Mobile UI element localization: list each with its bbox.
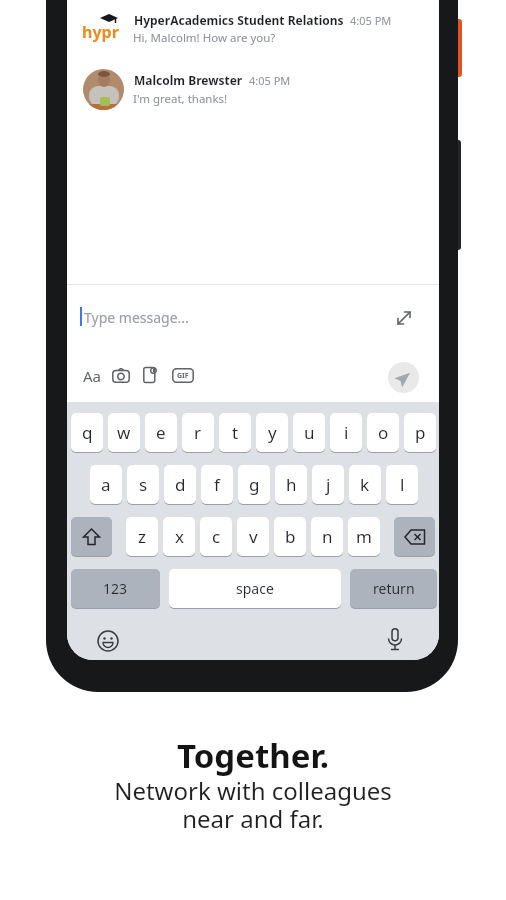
staticText: Malcolm Brewster bbox=[134, 72, 243, 88]
button[interactable]: e bbox=[145, 413, 177, 452]
button[interactable]: f bbox=[201, 465, 233, 504]
staticText: h bbox=[286, 473, 297, 496]
staticText: t bbox=[232, 421, 239, 444]
staticText: Network with colleagues near and far. bbox=[114, 774, 392, 835]
staticText: y bbox=[268, 421, 277, 444]
staticText: b bbox=[285, 525, 296, 548]
staticText: m bbox=[356, 525, 372, 548]
staticText: hypr bbox=[82, 21, 119, 43]
button[interactable]: p bbox=[404, 413, 436, 452]
button[interactable]: r bbox=[182, 413, 214, 452]
button[interactable]: h bbox=[275, 465, 307, 504]
button[interactable]: o bbox=[367, 413, 399, 452]
staticText: z bbox=[138, 525, 146, 548]
button[interactable] bbox=[394, 517, 435, 556]
button[interactable]: m bbox=[348, 517, 380, 556]
button[interactable]: t bbox=[219, 413, 251, 452]
button[interactable] bbox=[143, 366, 157, 384]
button[interactable]: s bbox=[127, 465, 159, 504]
button[interactable]: l bbox=[386, 465, 418, 504]
staticText: HyperAcademics Student Relations bbox=[134, 12, 344, 28]
button[interactable]: g bbox=[238, 465, 270, 504]
button[interactable]: n bbox=[311, 517, 343, 556]
button[interactable]: x bbox=[163, 517, 195, 556]
button[interactable]: y bbox=[256, 413, 288, 452]
staticText: q bbox=[82, 421, 93, 444]
button[interactable] bbox=[388, 362, 419, 393]
staticText: c bbox=[212, 525, 221, 548]
staticText: I'm great, thanks! bbox=[133, 91, 228, 107]
staticText: w bbox=[117, 421, 131, 444]
staticText: d bbox=[175, 473, 186, 496]
staticText: Hi, Malcolm! How are you? bbox=[133, 30, 276, 46]
staticText: e bbox=[156, 421, 166, 444]
button[interactable]: c bbox=[200, 517, 232, 556]
staticText: l bbox=[400, 473, 405, 496]
staticText: u bbox=[304, 421, 315, 444]
staticText: v bbox=[249, 525, 258, 548]
button[interactable]: i bbox=[330, 413, 362, 452]
button[interactable]: Aa bbox=[83, 366, 102, 386]
button[interactable]: 123 bbox=[71, 569, 160, 608]
button[interactable]: k bbox=[349, 465, 381, 504]
button[interactable]: q bbox=[71, 413, 103, 452]
button[interactable]: w bbox=[108, 413, 140, 452]
staticText: i bbox=[344, 421, 349, 444]
button[interactable] bbox=[97, 630, 119, 652]
button[interactable] bbox=[71, 517, 112, 556]
button[interactable] bbox=[112, 368, 130, 383]
button[interactable] bbox=[396, 310, 412, 326]
button[interactable]: u bbox=[293, 413, 325, 452]
staticText: j bbox=[326, 473, 331, 496]
button[interactable]: z bbox=[126, 517, 158, 556]
staticText: Together. bbox=[177, 733, 330, 778]
button[interactable]: v bbox=[237, 517, 269, 556]
staticText: f bbox=[214, 473, 220, 496]
staticText: g bbox=[249, 473, 260, 496]
staticText: o bbox=[378, 421, 389, 444]
button[interactable]: GIF bbox=[172, 368, 194, 383]
staticText: k bbox=[360, 473, 370, 496]
button[interactable]: Type message... bbox=[84, 308, 189, 327]
staticText: x bbox=[175, 525, 184, 548]
button[interactable]: space bbox=[169, 569, 341, 608]
staticText: space bbox=[236, 579, 274, 598]
staticText: r bbox=[194, 421, 202, 444]
staticText: return bbox=[373, 579, 415, 598]
staticText: a bbox=[101, 473, 111, 496]
button[interactable]: d bbox=[164, 465, 196, 504]
staticText: 4:05 PM bbox=[249, 73, 291, 88]
button[interactable]: return bbox=[350, 569, 437, 608]
staticText: GIF bbox=[177, 371, 189, 381]
button[interactable]: j bbox=[312, 465, 344, 504]
button[interactable]: b bbox=[274, 517, 306, 556]
button[interactable] bbox=[387, 628, 403, 652]
staticText: 4:05 PM bbox=[350, 13, 392, 28]
staticText: s bbox=[139, 473, 148, 496]
staticText: p bbox=[415, 421, 426, 444]
staticText: n bbox=[322, 525, 333, 548]
staticText: 123 bbox=[103, 579, 128, 598]
button[interactable]: a bbox=[90, 465, 122, 504]
